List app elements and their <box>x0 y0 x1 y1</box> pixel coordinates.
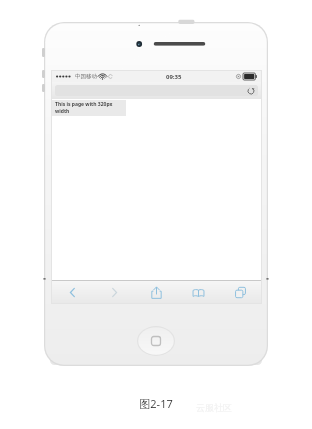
button[interactable]: Home <box>137 326 175 356</box>
button[interactable]: Forward <box>93 281 135 303</box>
staticText: 09:35 <box>166 73 182 81</box>
staticText: 云服社区 <box>196 402 232 413</box>
other: Reload <box>247 87 255 95</box>
staticText: This is page with 320px width <box>55 101 113 115</box>
staticText: 中国移动 <box>75 73 97 80</box>
button[interactable]: Share <box>135 281 177 303</box>
button[interactable]: Reload <box>55 85 258 96</box>
button[interactable]: Back <box>52 281 93 303</box>
staticText: 图2-17 <box>139 396 173 411</box>
button[interactable]: Bookmarks <box>177 281 219 303</box>
button[interactable]: Tabs <box>219 281 261 303</box>
